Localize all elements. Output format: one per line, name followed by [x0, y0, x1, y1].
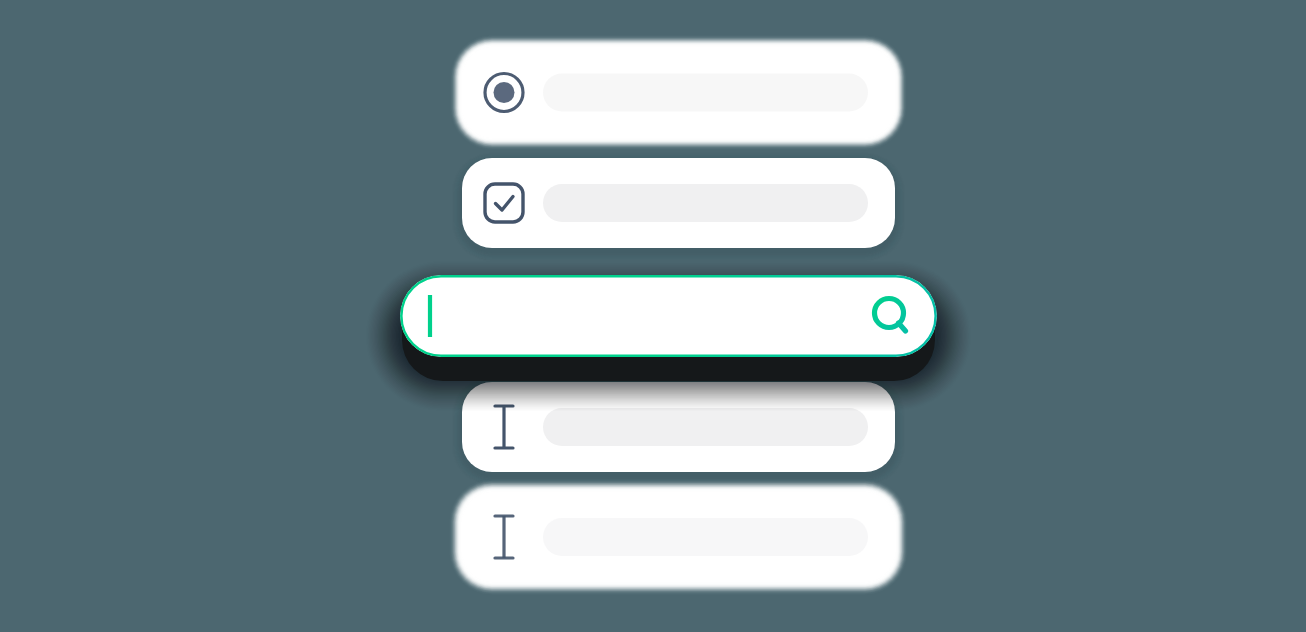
- button[interactable]: Text field: [462, 492, 895, 582]
- button[interactable]: Search field: [400, 275, 937, 357]
- button[interactable]: Checkbox option: [462, 158, 895, 248]
- button[interactable]: Radio option: [462, 47, 895, 138]
- button[interactable]: Text field: [462, 382, 895, 472]
